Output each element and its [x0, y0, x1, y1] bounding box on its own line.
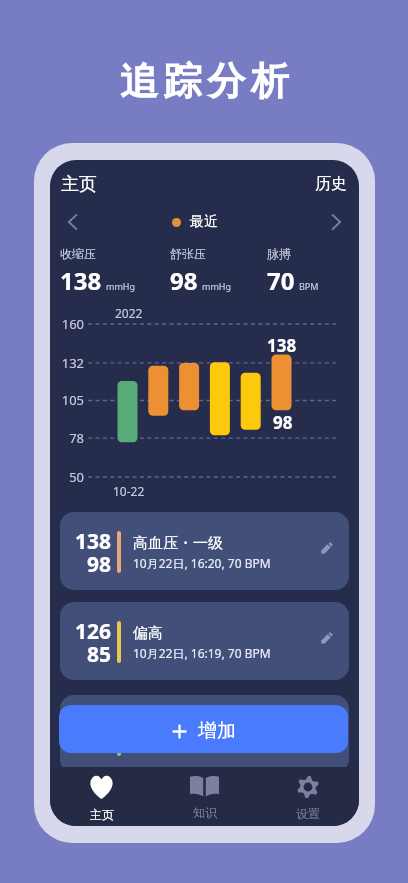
staticText: 138: [60, 264, 102, 297]
staticText: 10月22日, 16:20, 70 BPM: [133, 555, 271, 571]
staticText: 98: [87, 550, 112, 572]
button[interactable]: 138: [60, 512, 349, 590]
staticText: BPM: [299, 280, 319, 292]
staticText: 10月22日, 16:18, 70 BPM: [133, 738, 271, 754]
staticText: 10月22日, 16:19, 70 BPM: [133, 645, 271, 661]
button[interactable]: 历史: [306, 166, 356, 202]
staticText: 50: [69, 468, 84, 486]
button[interactable]: 设置: [256, 767, 359, 826]
staticText: 85: [87, 640, 112, 662]
staticText: 160: [61, 315, 84, 333]
staticText: 105: [61, 391, 84, 409]
staticText: 138: [267, 334, 297, 357]
staticText: 主页: [61, 173, 97, 196]
staticText: 10-22: [113, 483, 145, 499]
staticText: 舒张压: [170, 246, 206, 261]
staticText: 138: [75, 527, 112, 549]
staticText: 脉搏: [267, 246, 291, 261]
staticText: 132: [61, 354, 84, 372]
staticText: 高血压・一级: [133, 534, 223, 550]
staticText: 98: [170, 264, 198, 297]
staticText: 最近: [190, 213, 218, 231]
staticText: mmHg: [106, 280, 136, 292]
staticText: 70: [267, 264, 295, 297]
staticText: 98: [273, 411, 293, 434]
staticText: 追踪分析: [120, 57, 295, 105]
staticText: 偏高: [133, 624, 163, 640]
staticText: 78: [69, 429, 84, 447]
staticText: 增加: [198, 719, 236, 743]
staticText: 历史: [315, 174, 347, 194]
button[interactable]: Next: [322, 208, 350, 236]
staticText: 126: [75, 617, 112, 639]
button[interactable]: 120: [60, 695, 349, 773]
staticText: 收缩压: [60, 246, 96, 261]
staticText: 主页: [90, 807, 114, 822]
staticText: 2022: [115, 305, 143, 321]
button[interactable]: 知识: [153, 767, 256, 826]
button[interactable]: Previous: [58, 208, 86, 236]
button[interactable]: 增加: [59, 705, 348, 753]
staticText: 设置: [296, 806, 320, 821]
button[interactable]: 126: [60, 602, 349, 680]
button[interactable]: Edit: [315, 627, 337, 649]
staticText: mmHg: [202, 280, 232, 292]
staticText: 知识: [193, 805, 217, 820]
button[interactable]: 主页: [50, 767, 153, 826]
button[interactable]: 主页: [52, 166, 106, 202]
button[interactable]: Edit: [315, 537, 337, 559]
button[interactable]: 最近: [172, 212, 218, 232]
